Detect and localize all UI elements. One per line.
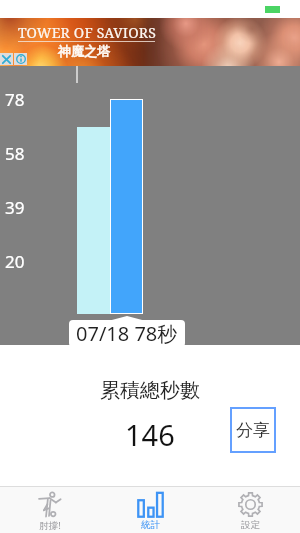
button[interactable]: Ad info [14,53,27,65]
button[interactable]: 統計 [100,487,200,531]
staticText: 39 [5,196,25,219]
staticText: 07/18 78秒 [76,320,178,347]
staticText: 神魔之塔 [58,43,110,59]
staticText: 78 [5,88,25,111]
button[interactable]: Close ad [0,53,13,65]
staticText: 58 [5,142,25,165]
staticText: TOWER OF SAVIORS [18,23,156,42]
button[interactable]: 分享 [230,407,276,453]
staticText: 分享 [236,420,270,441]
staticText: 設定 [241,519,260,531]
button[interactable]: 肘撐! [0,487,100,532]
button[interactable]: TOWER OF SAVIORS [0,18,300,66]
staticText: 肘撐! [39,519,61,532]
staticText: 20 [5,250,25,273]
staticText: 146 [125,415,175,454]
staticText: 統計 [141,519,160,531]
button[interactable]: 設定 [200,487,300,531]
staticText: 累積總秒數 [100,378,200,403]
